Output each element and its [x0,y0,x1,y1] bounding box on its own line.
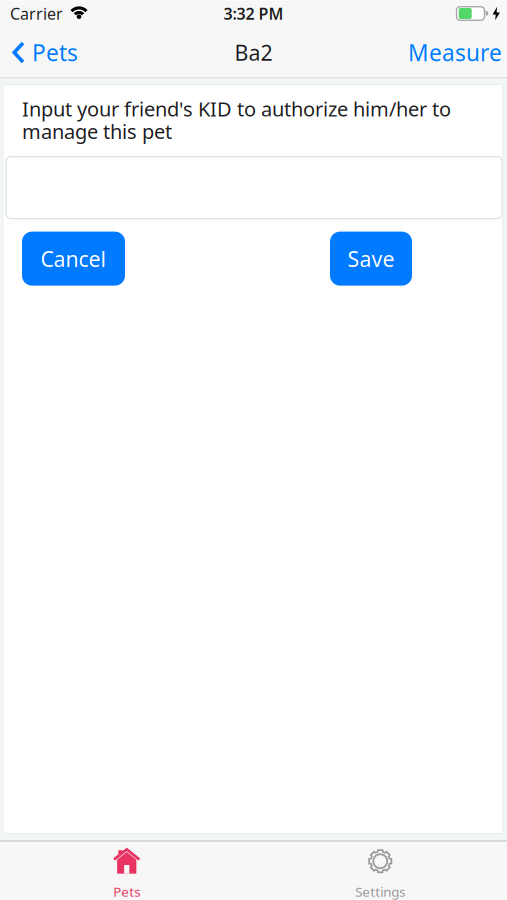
button[interactable]: Cancel [22,232,125,286]
button[interactable]: Measure [408,37,507,67]
staticText: Save [347,244,394,273]
staticText: Input your friend's KID to authorize him… [22,95,451,145]
staticText: Ba2 [234,38,272,67]
staticText: Cancel [40,244,106,273]
staticText: Measure [408,37,502,67]
button[interactable]: Save [330,232,412,286]
staticText: Settings [355,883,405,900]
button[interactable]: Settings [253,842,507,900]
staticText: Carrier [10,3,63,24]
staticText: Pets [113,883,140,900]
staticText: Pets [32,37,78,67]
button[interactable]: Pets [0,37,78,67]
button[interactable]: Pets [0,842,253,900]
staticText: 3:32 PM [223,3,283,24]
